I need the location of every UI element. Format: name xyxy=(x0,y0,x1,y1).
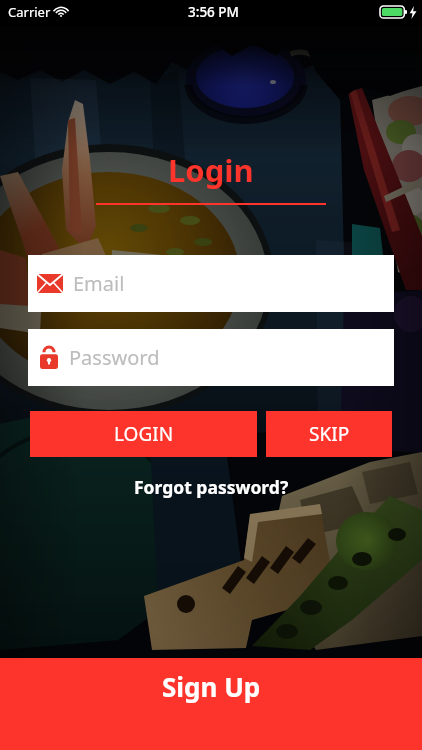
button[interactable]: Email xyxy=(28,255,394,312)
staticText: SKIP xyxy=(309,421,350,447)
staticText: Email xyxy=(73,270,125,297)
staticText: 3:56 PM xyxy=(188,3,239,21)
staticText: Password xyxy=(69,344,160,371)
staticText: Forgot password? xyxy=(134,475,289,499)
staticText: Carrier xyxy=(8,3,51,21)
staticText: Sign Up xyxy=(162,669,261,704)
button[interactable]: Sign Up xyxy=(0,658,422,750)
button[interactable]: Password xyxy=(28,329,394,386)
staticText: Login xyxy=(168,149,254,191)
button[interactable]: Forgot password? xyxy=(130,471,293,503)
staticText: LOGIN xyxy=(114,421,174,447)
button[interactable]: LOGIN xyxy=(30,411,257,457)
button[interactable]: SKIP xyxy=(266,411,392,457)
